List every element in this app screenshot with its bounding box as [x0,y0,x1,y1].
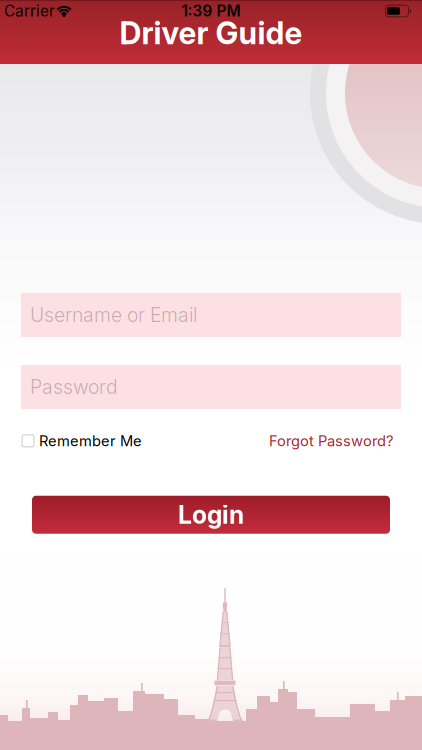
staticText: Username or Email [30,303,197,327]
staticText: Login [178,500,244,530]
staticText: Remember Me [39,432,142,450]
button[interactable]: Login [32,496,390,534]
staticText: 1:39 PM [181,2,240,20]
button[interactable]: Username or Email [21,293,401,337]
button[interactable]: Password [21,365,401,409]
button[interactable]: Remember Me [22,432,142,450]
staticText: Forgot Password? [269,432,393,450]
staticText: Password [30,375,118,399]
button[interactable]: Forgot Password? [269,432,393,450]
staticText: Carrier [4,2,55,20]
staticText: Driver Guide [119,14,302,51]
